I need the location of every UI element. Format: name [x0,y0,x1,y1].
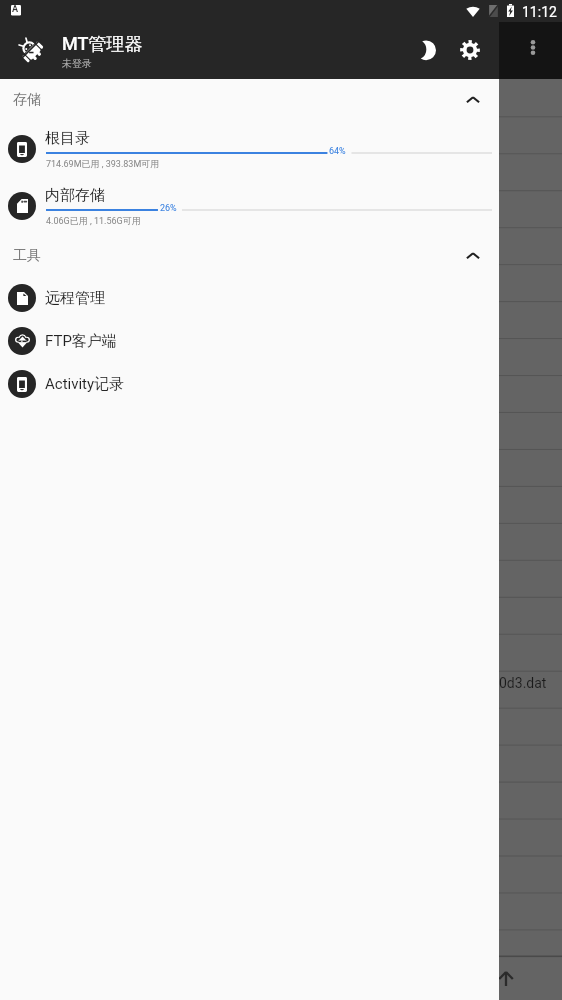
staticText: 714.69M已用 , 393.83M可用 [46,158,160,169]
staticText: A [12,4,19,15]
staticText: 根目录 [45,129,90,148]
button[interactable]: Night mode [409,34,441,66]
staticText: 工具 [13,247,41,265]
staticText: 存储 [13,91,41,109]
button[interactable]: MT管理器 [0,22,499,79]
staticText: 远程管理 [45,289,105,308]
staticText: FTP客户端 [45,332,117,351]
staticText: 内部存储 [45,186,105,205]
button[interactable]: Settings [454,34,486,66]
staticText: 未登录 [62,57,92,70]
staticText: 0d3.dat [499,675,547,691]
button[interactable]: 根目录 [0,121,499,178]
button[interactable]: Activity记录 [0,363,499,406]
button[interactable]: Up one level [490,962,522,994]
button[interactable]: 内部存储 [0,178,499,235]
button[interactable]: FTP客户端 [0,320,499,363]
staticText: 64% [329,146,346,157]
staticText: MT管理器 [62,33,143,56]
button[interactable]: 存储 [0,79,499,121]
staticText: 11:12 [522,4,557,20]
staticText: 26% [160,203,177,214]
staticText: 4.06G已用 , 11.56G可用 [46,215,141,226]
button[interactable]: More options [517,32,549,64]
button[interactable]: 远程管理 [0,277,499,320]
button[interactable]: 工具 [0,235,499,277]
staticText: Activity记录 [45,375,125,394]
